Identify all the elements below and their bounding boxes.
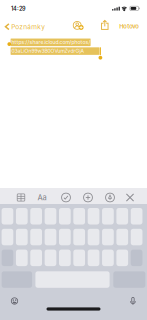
button[interactable]: Hotovo <box>118 17 147 35</box>
button[interactable]: Table <box>12 190 30 205</box>
button[interactable]: Emoji keyboard <box>5 294 23 307</box>
button[interactable]: Dictation <box>124 294 142 307</box>
staticText: Poznámky <box>11 23 45 31</box>
button[interactable]: Text format <box>33 190 51 205</box>
button[interactable]: Dismiss keyboard <box>121 190 139 205</box>
staticText: Hotovo <box>119 23 139 30</box>
button[interactable]: Add attachment <box>79 190 97 205</box>
staticText: 03aLiOn99w3B0OVumZvdrGjA <box>11 48 83 54</box>
button[interactable]: Checklist <box>57 190 75 205</box>
button[interactable]: Poznámky <box>0 17 44 35</box>
button[interactable]: Share <box>97 17 114 35</box>
staticText: https://share.icloud.com/photos/ <box>11 39 90 45</box>
staticText: 14:29 <box>11 5 26 12</box>
staticText: Aa <box>37 193 46 202</box>
button[interactable]: Collaborate <box>72 17 89 35</box>
button[interactable]: Markup <box>101 190 119 205</box>
